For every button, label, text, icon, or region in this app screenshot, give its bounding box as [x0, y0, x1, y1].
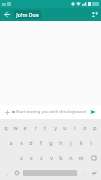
button[interactable]: w	[10, 119, 20, 135]
button[interactable]: Enter	[88, 165, 100, 180]
staticText: z	[20, 154, 23, 161]
staticText: p	[93, 124, 97, 131]
button[interactable]: v	[46, 150, 56, 165]
button[interactable]: n	[66, 150, 76, 165]
staticText: k	[80, 139, 83, 146]
staticText: u	[63, 124, 67, 131]
staticText: q	[4, 124, 8, 131]
staticText: b	[59, 154, 63, 161]
staticText: n	[69, 154, 73, 161]
staticText: l	[90, 139, 92, 146]
button[interactable]: o	[80, 119, 90, 135]
staticText: c	[40, 154, 43, 161]
staticText: h	[59, 139, 63, 146]
staticText: e	[23, 124, 27, 131]
staticText: ,	[6, 169, 8, 176]
button[interactable]: q	[1, 119, 10, 135]
button[interactable]: Start texting you with this keyboard	[12, 105, 88, 119]
button[interactable]: s	[16, 135, 26, 150]
button[interactable]: a	[5, 135, 16, 150]
button[interactable]: u	[60, 119, 70, 135]
button[interactable]: x	[26, 150, 36, 165]
button[interactable]: l	[86, 135, 96, 150]
button[interactable]: t	[40, 119, 50, 135]
button[interactable]: Add attachment	[3, 108, 12, 117]
button[interactable]: j	[66, 135, 76, 150]
button[interactable]: g	[46, 135, 56, 150]
staticText: i	[74, 124, 76, 131]
button[interactable]: ,	[1, 165, 12, 180]
button[interactable]: p	[90, 119, 100, 135]
button[interactable]: b	[56, 150, 66, 165]
staticText: v	[50, 154, 53, 161]
button[interactable]: Emoji	[12, 165, 22, 180]
button[interactable]: Back	[0, 8, 13, 21]
staticText: w	[13, 124, 18, 131]
button[interactable]: h	[56, 135, 66, 150]
staticText: j	[70, 139, 72, 146]
staticText: .	[82, 169, 84, 176]
button[interactable]: c	[36, 150, 46, 165]
button[interactable]: Backspace	[86, 150, 100, 165]
button[interactable]: r	[30, 119, 40, 135]
button[interactable]: Send	[88, 107, 98, 117]
staticText: Start texting you with this keyboard	[16, 109, 86, 115]
button[interactable]: f	[36, 135, 46, 150]
staticText: f	[40, 139, 42, 146]
button[interactable]: e	[20, 119, 30, 135]
button[interactable]: m	[76, 150, 86, 165]
button[interactable]: i	[70, 119, 80, 135]
staticText: g	[49, 139, 53, 146]
staticText: d	[29, 139, 33, 146]
staticText: a	[9, 139, 13, 146]
button[interactable]: Add person	[88, 8, 101, 21]
button[interactable]: d	[26, 135, 36, 150]
staticText: t	[44, 124, 46, 131]
staticText: s	[20, 139, 23, 146]
staticText: John Doe	[16, 11, 39, 18]
button[interactable]: John Doe	[14, 10, 41, 19]
staticText: y	[54, 124, 57, 131]
button[interactable]: k	[76, 135, 86, 150]
staticText: x	[30, 154, 33, 161]
staticText: o	[83, 124, 87, 131]
staticText: m	[78, 154, 84, 161]
staticText: r	[34, 124, 37, 131]
button[interactable]: z	[16, 150, 26, 165]
button[interactable]: y	[50, 119, 60, 135]
